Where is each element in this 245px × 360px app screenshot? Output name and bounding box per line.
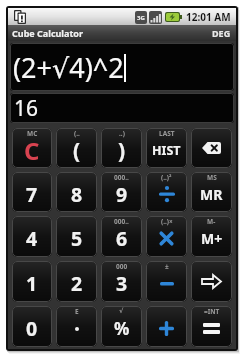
staticText: 8: [71, 181, 83, 208]
staticText: C: [24, 134, 40, 167]
staticText: 7: [26, 181, 38, 208]
button[interactable]: MC: [12, 128, 52, 168]
button[interactable]: 2: [56, 261, 97, 302]
staticText: 000..: [114, 173, 129, 182]
staticText: 12:01 AM: [186, 10, 231, 24]
button[interactable]: 4: [12, 216, 52, 257]
button[interactable]: 000..: [101, 216, 142, 257]
staticText: 2: [71, 270, 83, 297]
staticText: ..): [119, 129, 125, 138]
staticText: (: [73, 136, 81, 165]
staticText: (..: [74, 129, 80, 138]
button[interactable]: [191, 128, 232, 168]
staticText: ): [118, 136, 126, 165]
button[interactable]: [191, 261, 232, 302]
button[interactable]: E: [56, 306, 97, 347]
staticText: LAST: [159, 129, 175, 138]
staticText: Cube Calculator: [12, 27, 84, 39]
button[interactable]: 5: [56, 216, 97, 257]
button[interactable]: 8: [56, 172, 97, 212]
staticText: MR: [200, 185, 223, 204]
staticText: (2+√4)^2: [13, 49, 124, 86]
button[interactable]: (..)×: [146, 216, 187, 257]
button[interactable]: ±: [146, 261, 187, 302]
button[interactable]: ..): [101, 128, 142, 168]
staticText: 3: [116, 270, 128, 297]
button[interactable]: M-: [191, 216, 232, 257]
button[interactable]: LAST: [146, 128, 187, 168]
staticText: M+: [201, 229, 223, 248]
button[interactable]: 0: [12, 306, 52, 347]
staticText: MS: [207, 173, 217, 182]
staticText: √: [119, 307, 124, 315]
staticText: %: [114, 317, 130, 340]
staticText: (..)²: [161, 173, 172, 182]
staticText: MC: [27, 129, 38, 138]
button[interactable]: (..: [56, 128, 97, 168]
staticText: ±: [165, 262, 169, 271]
staticText: 9: [116, 181, 128, 208]
staticText: 6: [116, 225, 128, 252]
staticText: 000..: [114, 217, 129, 226]
staticText: 5: [71, 225, 83, 252]
button[interactable]: 000: [101, 261, 142, 302]
staticText: 1: [26, 270, 38, 297]
staticText: E: [75, 307, 79, 316]
staticText: (..)×: [161, 217, 173, 226]
staticText: DEG: [212, 27, 231, 39]
staticText: 4: [26, 225, 38, 252]
staticText: HIST: [152, 142, 181, 159]
staticText: 3G: [137, 14, 145, 22]
button[interactable]: 7: [12, 172, 52, 212]
staticText: 16: [14, 94, 39, 123]
staticText: M-: [207, 217, 216, 226]
button[interactable]: =INT: [191, 306, 232, 347]
button[interactable]: √: [101, 306, 142, 347]
button[interactable]: 000..: [101, 172, 142, 212]
staticText: 0: [26, 315, 38, 342]
button[interactable]: 1: [12, 261, 52, 302]
button[interactable]: (..)²: [146, 172, 187, 212]
staticText: 000: [116, 262, 128, 271]
staticText: =INT: [204, 307, 220, 316]
button[interactable]: MS: [191, 172, 232, 212]
button[interactable]: [146, 306, 187, 347]
